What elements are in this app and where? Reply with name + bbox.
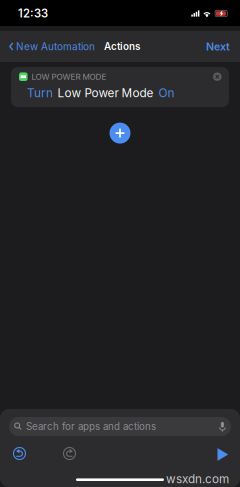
button[interactable]: On [158, 85, 174, 101]
staticText: LOW POWER MODE [32, 72, 107, 82]
button[interactable]: Remove action [212, 71, 223, 82]
staticText: Turn [27, 86, 53, 100]
button[interactable]: New Automation [9, 35, 98, 58]
button[interactable]: Turn [27, 85, 53, 101]
staticText: New Automation [16, 40, 95, 53]
staticText: Next [206, 40, 230, 53]
button[interactable]: Run automation [213, 444, 230, 463]
staticText: 12:33 [18, 7, 48, 20]
staticText: Low Power Mode [57, 86, 153, 100]
button[interactable]: Next [203, 35, 230, 58]
staticText: Search for apps and actions [26, 421, 156, 432]
button[interactable]: Add action [107, 120, 133, 146]
staticText: Actions [104, 40, 140, 52]
button[interactable]: Search for apps and actions [9, 417, 231, 436]
button[interactable]: Undo [10, 444, 29, 463]
staticText: wsxdn.com [166, 472, 229, 486]
staticText: On [158, 86, 174, 100]
button[interactable]: Redo [60, 444, 79, 463]
